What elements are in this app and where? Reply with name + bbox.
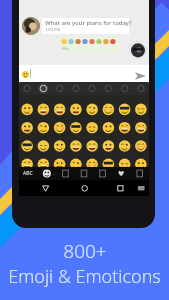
button[interactable]: Emoji: [19, 67, 34, 82]
staticText: 1:00 PM: [45, 27, 61, 32]
button[interactable]: Contact avatar: [22, 17, 40, 35]
staticText: ABC: [23, 170, 33, 177]
staticText: 800+: [63, 238, 107, 264]
staticText: Nice: [62, 46, 70, 51]
button[interactable]: Send: [131, 65, 149, 82]
button[interactable]: Nice: [60, 37, 119, 52]
staticText: Emoji & Emoticons: [8, 264, 161, 289]
button[interactable]: What are your plans for today?: [42, 18, 129, 34]
button[interactable]: My avatar: [129, 41, 147, 59]
staticText: What are your plans for today?: [45, 19, 132, 27]
